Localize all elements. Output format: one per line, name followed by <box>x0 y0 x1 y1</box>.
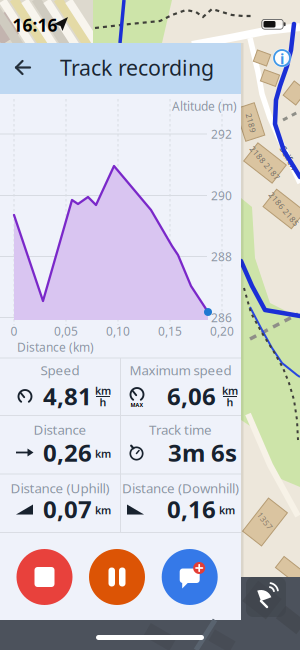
staticText: 0,26 <box>43 437 92 468</box>
staticText: 0,10 <box>106 323 130 339</box>
button[interactable]: Stop recording <box>16 549 72 605</box>
staticText: 2188 2187 <box>244 158 286 168</box>
staticText: h <box>99 395 106 409</box>
staticText: km <box>95 503 111 517</box>
staticText: 0 <box>10 323 17 339</box>
staticText: 288 <box>211 248 232 264</box>
staticText: MAX <box>130 401 143 409</box>
staticText: 0,07 <box>43 493 92 525</box>
staticText: 0,05 <box>54 323 78 339</box>
staticText: km <box>222 383 238 398</box>
button[interactable]: Back <box>7 56 39 78</box>
staticText: 1357 <box>255 516 275 526</box>
staticText: 2186 2185 <box>263 204 300 214</box>
staticText: km <box>95 383 111 398</box>
staticText: km <box>219 503 235 517</box>
staticText: Seifen <box>276 152 300 164</box>
staticText: 286 <box>211 309 232 325</box>
staticText: 6,06 <box>167 380 216 412</box>
staticText: i <box>280 49 284 68</box>
staticText: Altitude (m) <box>172 98 237 114</box>
button[interactable]: Position mode <box>245 576 287 618</box>
staticText: 4,81 <box>43 380 92 412</box>
staticText: h <box>226 395 233 409</box>
staticText: Track time <box>149 421 212 438</box>
staticText: Speed <box>40 361 79 379</box>
staticText: Distance (Downhill) <box>122 479 239 497</box>
staticText: 0,16 <box>167 493 216 525</box>
staticText: 290 <box>211 187 232 203</box>
staticText: 16:16 <box>12 13 57 36</box>
staticText: Distance <box>33 421 86 438</box>
staticText: Distance (Uphill) <box>10 479 109 497</box>
button[interactable]: Add waypoint <box>162 549 218 605</box>
staticText: 2189 <box>241 118 261 128</box>
staticText: Maximum speed <box>129 361 231 379</box>
button[interactable]: Pause recording <box>89 549 145 605</box>
staticText: 0,20 <box>210 323 234 339</box>
staticText: Track recording <box>60 53 214 82</box>
staticText: Distance (km) <box>17 339 94 355</box>
staticText: km <box>95 446 111 461</box>
staticText: 292 <box>211 126 232 142</box>
staticText: 0,15 <box>158 323 182 339</box>
staticText: 3m 6s <box>168 437 237 468</box>
